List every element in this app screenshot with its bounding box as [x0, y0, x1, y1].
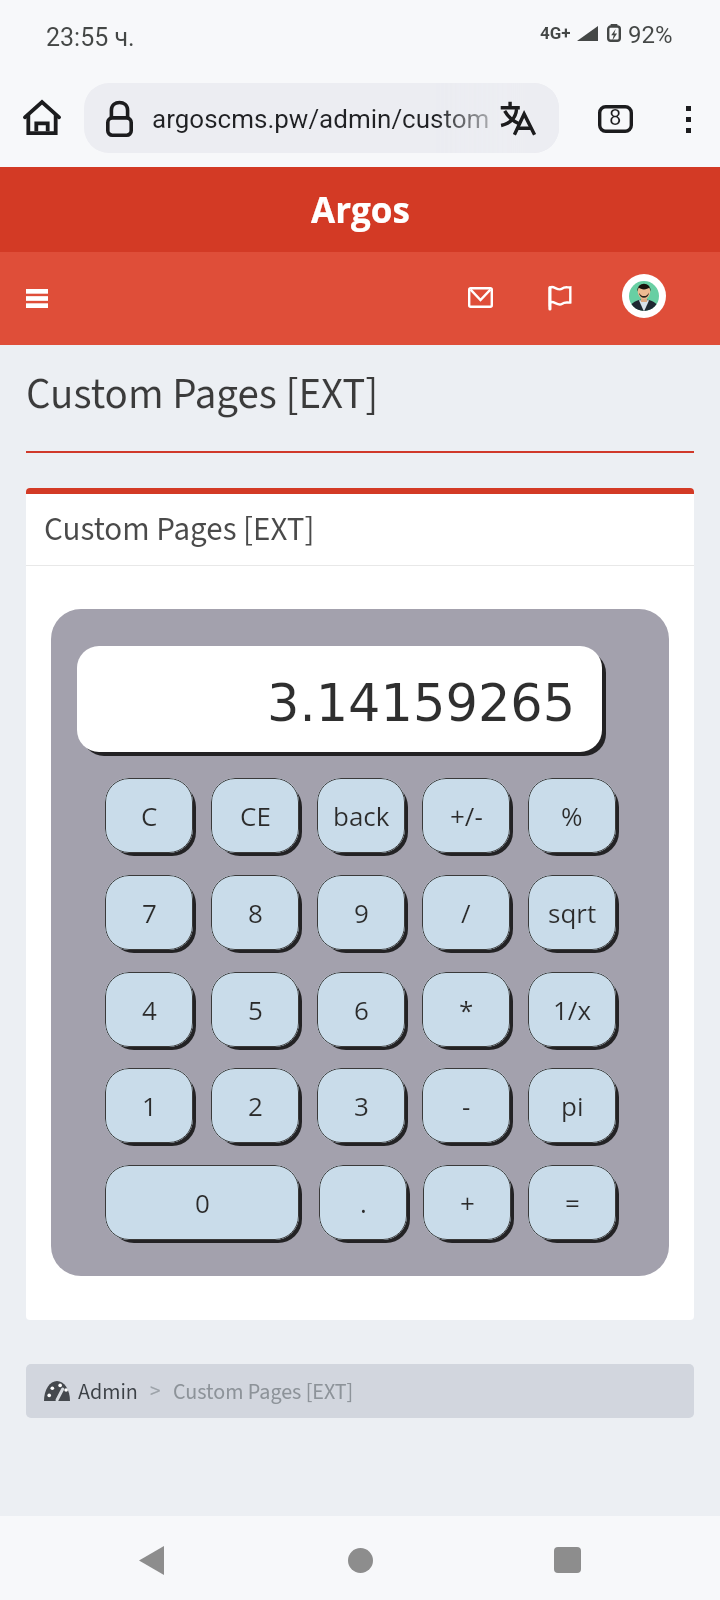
button[interactable]: 2	[211, 1068, 299, 1143]
button[interactable]: pi	[528, 1068, 616, 1143]
staticText: 8	[609, 105, 622, 131]
button[interactable]: =	[528, 1165, 616, 1240]
button[interactable]: Admin	[26, 1364, 694, 1418]
staticText: 3.14159265	[267, 674, 576, 733]
staticText: +	[460, 1185, 475, 1220]
button[interactable]: 0	[105, 1165, 299, 1240]
staticText: sqrt	[548, 895, 597, 930]
staticText: /	[461, 895, 471, 930]
button[interactable]: Back	[91, 1516, 211, 1600]
button[interactable]: C	[105, 778, 193, 853]
button[interactable]: back	[317, 778, 405, 853]
staticText: CE	[240, 798, 271, 833]
button[interactable]: argoscms.pw/admin/custom	[84, 83, 559, 153]
button[interactable]: -	[422, 1068, 510, 1143]
button[interactable]: Messages	[452, 269, 508, 325]
staticText: %	[561, 798, 583, 833]
button[interactable]: Home	[300, 1516, 420, 1600]
button[interactable]: /	[422, 875, 510, 950]
staticText: >	[150, 1376, 161, 1406]
staticText: 5	[248, 992, 263, 1027]
button[interactable]: Recent apps	[507, 1516, 627, 1600]
button[interactable]: Menu	[7, 271, 67, 326]
button[interactable]: Translate page	[490, 90, 546, 146]
button[interactable]: 9	[317, 875, 405, 950]
staticText: 1	[142, 1088, 157, 1123]
button[interactable]: +/-	[422, 778, 510, 853]
button[interactable]: +	[423, 1165, 511, 1240]
button[interactable]: Profile	[622, 274, 666, 318]
button[interactable]: %	[528, 778, 616, 853]
staticText: 7	[142, 895, 157, 930]
button[interactable]: 6	[317, 972, 405, 1047]
staticText: Admin	[78, 1376, 138, 1407]
staticText: 6	[354, 992, 369, 1027]
staticText: 2	[248, 1088, 263, 1123]
button[interactable]: 7	[105, 875, 193, 950]
staticText: .	[360, 1185, 367, 1220]
staticText: 9	[354, 895, 369, 930]
button[interactable]: 5	[211, 972, 299, 1047]
staticText: =	[565, 1185, 580, 1220]
button[interactable]: sqrt	[528, 875, 616, 950]
staticText: 1/x	[553, 992, 592, 1027]
staticText: Custom Pages [EXT]	[26, 364, 379, 425]
staticText: -	[462, 1088, 471, 1123]
button[interactable]: Home	[12, 84, 72, 152]
staticText: pi	[561, 1088, 584, 1123]
staticText: argoscms.pw/admin/custom	[152, 104, 490, 134]
staticText: 3	[354, 1088, 369, 1123]
staticText: 8	[248, 895, 263, 930]
staticText: 4	[142, 992, 157, 1027]
button[interactable]: 1/x	[528, 972, 616, 1047]
button[interactable]: Notifications	[531, 269, 587, 325]
staticText: Custom Pages [EXT]	[44, 506, 315, 553]
button[interactable]: *	[422, 972, 510, 1047]
button[interactable]: .	[319, 1165, 407, 1240]
staticText: C	[141, 798, 158, 833]
staticText: *	[459, 992, 474, 1027]
button[interactable]: CE	[211, 778, 299, 853]
button[interactable]: 1	[105, 1068, 193, 1143]
staticText: +/-	[450, 798, 483, 833]
staticText: 4G+	[540, 23, 571, 43]
button[interactable]: 4	[105, 972, 193, 1047]
button[interactable]: More options	[657, 89, 719, 149]
button[interactable]: 8	[211, 875, 299, 950]
staticText: back	[333, 798, 390, 833]
button[interactable]: 3	[317, 1068, 405, 1143]
staticText: 0	[195, 1185, 210, 1220]
staticText: 92%	[628, 21, 673, 49]
staticText: Argos	[311, 186, 410, 234]
staticText: 23:55 ч.	[46, 23, 135, 52]
button[interactable]: Tabs	[584, 89, 646, 149]
staticText: Custom Pages [EXT]	[173, 1376, 354, 1407]
